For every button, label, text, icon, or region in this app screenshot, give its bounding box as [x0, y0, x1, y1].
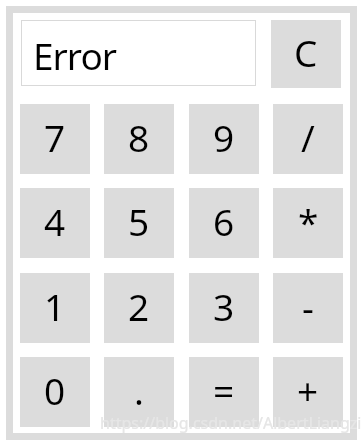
staticText: 3 [213, 281, 235, 331]
staticText: 6 [213, 196, 235, 246]
staticText: 4 [44, 196, 66, 246]
staticText: = [213, 365, 235, 415]
button[interactable]: Error [21, 20, 256, 86]
button[interactable]: 4 [20, 188, 90, 258]
staticText: . [134, 365, 144, 415]
button[interactable]: 7 [20, 104, 90, 174]
staticText: 7 [44, 112, 66, 162]
staticText: C [294, 27, 318, 77]
button[interactable]: C [271, 20, 341, 88]
button[interactable]: 2 [104, 273, 174, 343]
button[interactable]: * [273, 188, 343, 258]
staticText: https://blog.csdn.net/AlbertLiangzi [100, 412, 362, 434]
staticText: / [301, 112, 315, 162]
staticText: + [297, 365, 319, 415]
button[interactable]: 8 [104, 104, 174, 174]
staticText: Error [33, 30, 117, 80]
button[interactable]: - [273, 273, 343, 343]
staticText: 1 [44, 281, 66, 331]
button[interactable]: 5 [104, 188, 174, 258]
button[interactable]: 0 [20, 357, 90, 427]
staticText: 8 [128, 112, 150, 162]
button[interactable]: / [273, 104, 343, 174]
staticText: 0 [44, 365, 66, 415]
button[interactable]: 3 [189, 273, 259, 343]
staticText: 2 [128, 281, 150, 331]
button[interactable]: + [273, 357, 343, 427]
button[interactable]: = [189, 357, 259, 427]
button[interactable]: 9 [189, 104, 259, 174]
staticText: - [302, 281, 314, 331]
button[interactable]: 6 [189, 188, 259, 258]
button[interactable]: 1 [20, 273, 90, 343]
staticText: 5 [128, 196, 150, 246]
button[interactable]: . [104, 357, 174, 427]
staticText: * [298, 196, 319, 246]
staticText: 9 [213, 112, 235, 162]
